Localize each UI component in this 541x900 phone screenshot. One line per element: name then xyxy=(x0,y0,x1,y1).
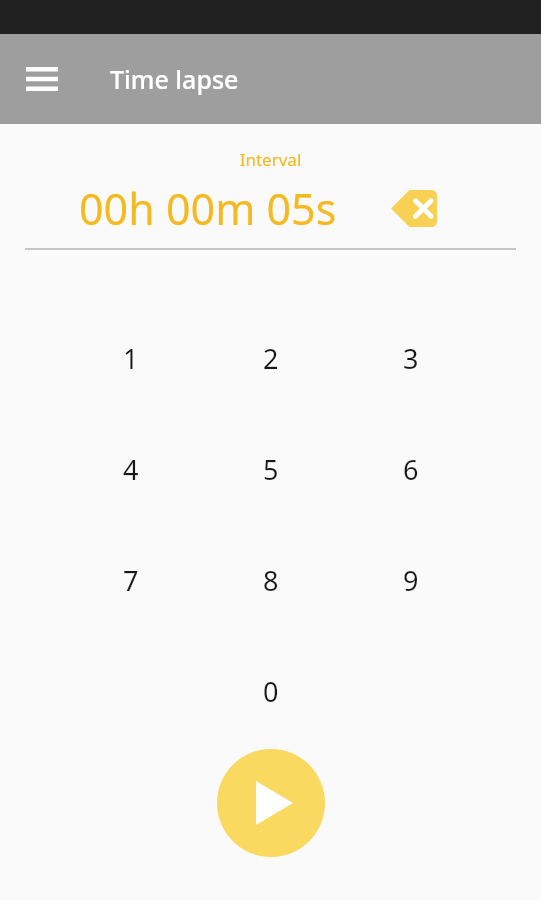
button[interactable]: Backspace xyxy=(378,183,450,233)
button[interactable]: 7 xyxy=(61,525,201,636)
staticText: Time lapse xyxy=(110,62,239,96)
staticText: 5 xyxy=(263,451,279,488)
button[interactable]: 6 xyxy=(341,414,481,525)
button[interactable]: 2 xyxy=(201,303,341,414)
staticText: 2 xyxy=(263,340,279,377)
staticText: 1 xyxy=(123,340,139,377)
button[interactable]: Start time lapse xyxy=(217,749,325,857)
button[interactable]: 4 xyxy=(61,414,201,525)
button[interactable]: 0 xyxy=(201,636,341,747)
button[interactable]: 3 xyxy=(341,303,481,414)
button[interactable]: 9 xyxy=(341,525,481,636)
staticText: 3 xyxy=(403,340,419,377)
staticText: 9 xyxy=(403,562,419,599)
button[interactable]: 8 xyxy=(201,525,341,636)
button[interactable]: 1 xyxy=(61,303,201,414)
staticText: 7 xyxy=(123,562,139,599)
staticText: 0 xyxy=(263,673,279,710)
button[interactable]: Open navigation menu xyxy=(14,51,70,107)
staticText: Interval xyxy=(0,148,541,171)
staticText: 4 xyxy=(123,451,139,488)
staticText: 6 xyxy=(403,451,419,488)
button[interactable]: 5 xyxy=(201,414,341,525)
staticText: 00h 00m 05s xyxy=(79,179,337,237)
staticText: 8 xyxy=(263,562,279,599)
